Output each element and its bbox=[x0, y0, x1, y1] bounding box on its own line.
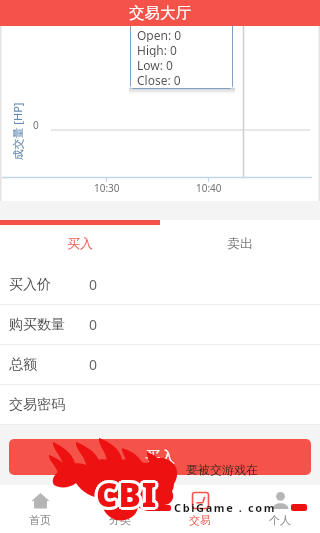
staticText: CBI bbox=[97, 474, 159, 519]
staticText: 购买数量 bbox=[9, 316, 65, 334]
staticText: CBI bbox=[96, 475, 158, 520]
staticText: 个人 bbox=[269, 513, 291, 527]
staticText: CBI bbox=[97, 471, 159, 516]
staticText: High: 0 bbox=[137, 42, 177, 57]
staticText: CBI bbox=[95, 472, 157, 517]
staticText: CBI bbox=[96, 473, 158, 518]
staticText: CBI bbox=[96, 471, 158, 516]
staticText: CBI bbox=[96, 470, 158, 515]
staticText: CBI bbox=[99, 472, 161, 517]
staticText: CBI bbox=[95, 470, 157, 515]
staticText: Low: 0 bbox=[137, 57, 173, 72]
button[interactable]: 买入 bbox=[0, 220, 160, 265]
button[interactable]: Categories bbox=[80, 485, 160, 533]
staticText: 总额 bbox=[9, 356, 37, 374]
button[interactable]: Profile bbox=[240, 485, 320, 533]
staticText: CBI bbox=[97, 473, 159, 518]
staticText: 买入 bbox=[145, 448, 175, 467]
staticText: 交易密码 bbox=[9, 396, 65, 414]
staticText: CBI bbox=[97, 470, 159, 515]
staticText: CBI bbox=[98, 472, 160, 517]
staticText: CBI bbox=[94, 472, 156, 517]
button[interactable]: 买入 bbox=[9, 439, 311, 475]
staticText: 买入 bbox=[67, 235, 93, 251]
staticText: CbiGame . com bbox=[174, 500, 277, 515]
staticText: 0 bbox=[89, 275, 98, 294]
staticText: 分类 bbox=[109, 513, 131, 527]
other: Profile bbox=[271, 491, 290, 510]
button[interactable]: 卖出 bbox=[160, 220, 320, 265]
staticText: CBI bbox=[94, 470, 156, 515]
button[interactable]: Trade bbox=[160, 485, 240, 533]
staticText: 0 bbox=[33, 118, 39, 132]
staticText: CBI bbox=[93, 472, 155, 517]
staticText: CBI bbox=[98, 471, 160, 516]
staticText: CBI bbox=[96, 474, 158, 519]
staticText: 10:30 bbox=[94, 181, 120, 195]
staticText: Close: 0 bbox=[137, 72, 181, 87]
staticText: CBI bbox=[96, 472, 158, 517]
staticText: 交易大厅 bbox=[129, 3, 191, 23]
staticText: CBI bbox=[98, 474, 160, 519]
staticText: CBI bbox=[95, 474, 157, 519]
staticText: CBI bbox=[95, 473, 157, 518]
button[interactable]: Home bbox=[0, 485, 80, 533]
staticText: 10:40 bbox=[196, 181, 222, 195]
staticText: Open: 0 bbox=[137, 27, 182, 42]
staticText: 交易 bbox=[189, 513, 211, 527]
staticText: 0 bbox=[89, 315, 98, 334]
staticText: CBI bbox=[98, 470, 160, 515]
other: Home bbox=[31, 491, 50, 510]
other: Categories bbox=[111, 491, 130, 510]
staticText: CBI bbox=[97, 472, 159, 517]
staticText: CBI bbox=[98, 473, 160, 518]
staticText: 成交量 [HP] bbox=[9, 102, 24, 160]
staticText: CBI bbox=[94, 473, 156, 518]
staticText: 要被交游戏在 bbox=[186, 462, 258, 477]
staticText: 买入价 bbox=[9, 276, 51, 294]
staticText: CBI bbox=[95, 471, 157, 516]
staticText: 首页 bbox=[29, 513, 51, 527]
other: Trade bbox=[191, 491, 210, 510]
staticText: 0 bbox=[89, 355, 98, 374]
staticText: CBI bbox=[94, 474, 156, 519]
staticText: CBI bbox=[96, 469, 158, 514]
staticText: 卖出 bbox=[227, 235, 253, 251]
staticText: CBI bbox=[94, 471, 156, 516]
